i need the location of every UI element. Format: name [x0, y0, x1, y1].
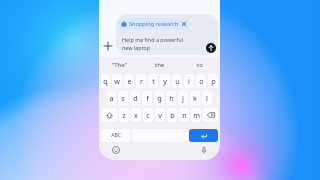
button[interactable]: Enter: [189, 129, 218, 142]
staticText: h: [169, 93, 174, 103]
staticText: z: [122, 110, 126, 120]
button[interactable]: ABC: [101, 129, 130, 142]
button[interactable]: v: [155, 108, 165, 122]
staticText: o: [199, 76, 204, 86]
button[interactable]: Add attachment: [102, 40, 114, 52]
button[interactable]: t: [148, 74, 158, 88]
button[interactable]: w: [112, 74, 122, 88]
staticText: j: [182, 93, 184, 103]
staticText: w: [114, 76, 120, 86]
button[interactable]: j: [178, 91, 188, 105]
staticText: the: [155, 61, 165, 69]
button[interactable]: u: [172, 74, 182, 88]
button[interactable]: Emoji: [101, 143, 130, 156]
staticText: y: [163, 76, 167, 86]
staticText: f: [146, 93, 149, 103]
staticText: u: [175, 76, 180, 86]
button[interactable]: p: [208, 74, 218, 88]
button[interactable]: Backspace: [203, 108, 218, 122]
staticText: i: [188, 76, 190, 86]
button[interactable]: d: [130, 91, 140, 105]
button[interactable]: o: [196, 74, 206, 88]
button[interactable]: s: [118, 91, 128, 105]
staticText: a: [109, 93, 114, 103]
button[interactable]: the: [140, 58, 180, 72]
staticText: l: [206, 93, 208, 103]
staticText: Shopping research: [129, 20, 179, 28]
staticText: to: [197, 61, 203, 69]
staticText: e: [127, 76, 132, 86]
button[interactable]: q: [101, 74, 110, 88]
staticText: n: [182, 110, 187, 120]
staticText: Help me find a powerful new laptop: [122, 36, 183, 52]
staticText: d: [133, 93, 138, 103]
staticText: ABC: [111, 132, 121, 139]
button[interactable]: m: [191, 108, 201, 122]
staticText: p: [211, 76, 216, 86]
button[interactable]: h: [166, 91, 176, 105]
staticText: m: [193, 110, 200, 120]
button[interactable]: Voice input: [189, 143, 218, 156]
button[interactable]: to: [180, 58, 220, 72]
button[interactable]: k: [190, 91, 200, 105]
button[interactable]: a: [107, 91, 116, 105]
button[interactable]: g: [154, 91, 164, 105]
button[interactable]: e: [124, 74, 134, 88]
button[interactable]: i: [184, 74, 194, 88]
button[interactable]: Shopping research: [116, 14, 218, 55]
staticText: “The”: [112, 61, 127, 69]
button[interactable]: f: [142, 91, 152, 105]
button[interactable]: l: [202, 91, 212, 105]
button[interactable]: c: [143, 108, 153, 122]
button[interactable]: n: [179, 108, 189, 122]
staticText: t: [152, 76, 155, 86]
staticText: b: [170, 110, 175, 120]
button[interactable]: y: [160, 74, 170, 88]
staticText: c: [146, 110, 150, 120]
staticText: k: [193, 93, 197, 103]
staticText: x: [134, 110, 138, 120]
button[interactable]: Shift: [101, 108, 117, 122]
staticText: s: [121, 93, 125, 103]
button[interactable]: Send: [206, 43, 216, 53]
button[interactable]: z: [119, 108, 129, 122]
button[interactable]: b: [167, 108, 177, 122]
button[interactable]: “The”: [99, 58, 140, 72]
button[interactable]: r: [136, 74, 146, 88]
button[interactable]: x: [131, 108, 141, 122]
button[interactable]: Shopping research: [121, 18, 186, 30]
staticText: g: [157, 93, 162, 103]
staticText: r: [140, 76, 143, 86]
staticText: v: [158, 110, 162, 120]
staticText: q: [103, 76, 108, 86]
